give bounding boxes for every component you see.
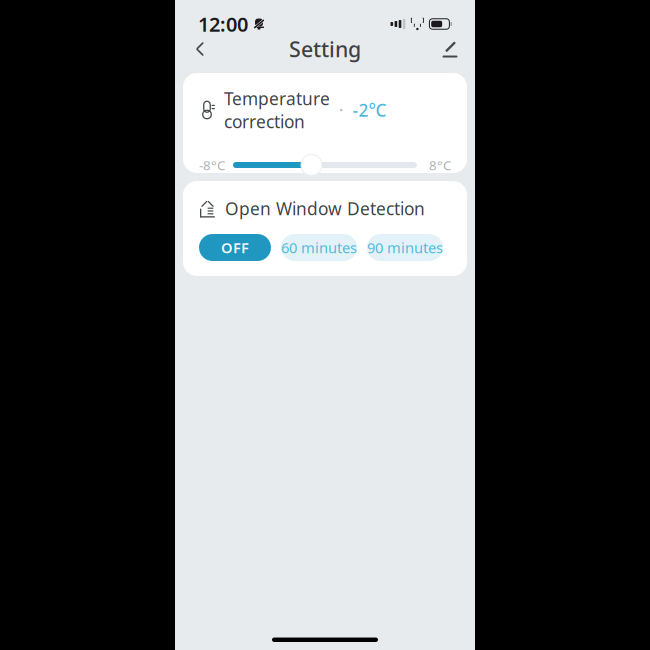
button[interactable]: Edit (433, 34, 467, 64)
button[interactable]: 60 minutes (281, 234, 357, 261)
staticText: Open Window Detection (225, 197, 425, 220)
staticText: 12:00 (198, 11, 248, 37)
staticText: Temperature correction (224, 87, 330, 133)
button[interactable]: Back (183, 34, 217, 64)
staticText: 60 minutes (281, 238, 357, 257)
staticText: -8°C (199, 156, 225, 174)
staticText: 8°C (429, 156, 451, 174)
staticText: Setting (289, 35, 361, 63)
staticText: OFF (221, 238, 249, 257)
button[interactable]: OFF (199, 234, 271, 261)
staticText: -2°C (352, 98, 386, 121)
button[interactable]: 90 minutes (367, 234, 443, 261)
staticText: 90 minutes (367, 238, 443, 257)
